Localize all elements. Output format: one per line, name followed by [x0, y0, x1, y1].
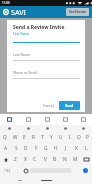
button[interactable]: First Name — [13, 32, 80, 43]
button[interactable]: I — [65, 132, 74, 143]
button[interactable]: Send Invite — [66, 8, 89, 16]
button[interactable]: , — [14, 165, 22, 176]
button[interactable]: Backspace — [80, 154, 92, 165]
button[interactable]: Key option 2 — [38, 125, 56, 132]
staticText: M — [73, 156, 78, 163]
staticText: E — [23, 134, 26, 141]
button[interactable]: Emoji — [22, 165, 30, 176]
button[interactable]: Z — [11, 154, 20, 165]
staticText: SAVI — [11, 7, 27, 17]
staticText: R — [32, 134, 35, 141]
staticText: Last Name — [13, 52, 30, 57]
button[interactable]: Last Name — [13, 52, 80, 61]
staticText: . — [74, 168, 76, 174]
button[interactable]: Key option 0 — [0, 125, 19, 132]
button[interactable]: H — [51, 143, 61, 154]
button[interactable]: Key option 4 — [74, 125, 92, 132]
button[interactable]: N — [60, 154, 70, 165]
staticText: B — [53, 156, 57, 163]
button[interactable]: L — [81, 143, 91, 154]
button[interactable]: Q — [0, 132, 10, 143]
staticText: Cancel — [43, 103, 54, 108]
staticText: Send Invite — [69, 10, 86, 14]
staticText: Send — [65, 103, 74, 108]
button[interactable]: Y — [47, 132, 56, 143]
button[interactable]: M — [70, 154, 80, 165]
button[interactable]: Home — [0, 114, 19, 125]
button[interactable]: Invites — [38, 114, 56, 125]
staticText: F — [35, 145, 38, 152]
staticText: Phone or Email — [13, 70, 38, 75]
button[interactable]: G — [41, 143, 51, 154]
staticText: I — [69, 134, 71, 141]
staticText: N — [63, 156, 67, 163]
button[interactable]: V — [40, 154, 50, 165]
button[interactable]: Reports — [56, 114, 74, 125]
staticText: J — [65, 145, 67, 152]
button[interactable]: Shift — [0, 154, 11, 165]
button[interactable]: Key option 1 — [19, 125, 38, 132]
staticText: P — [86, 134, 89, 141]
button[interactable]: P — [83, 132, 92, 143]
button[interactable]: T — [38, 132, 47, 143]
button[interactable]: J — [61, 143, 71, 154]
button[interactable]: Enter — [79, 165, 91, 176]
button[interactable]: E — [20, 132, 29, 143]
staticText: , — [17, 168, 19, 174]
button[interactable]: D — [21, 143, 31, 154]
button[interactable]: B — [50, 154, 60, 165]
staticText: ?123 — [4, 169, 11, 173]
staticText: S — [15, 145, 18, 152]
button[interactable]: R — [29, 132, 38, 143]
staticText: Send a Review Invite — [13, 24, 65, 31]
button[interactable]: Settings — [74, 114, 92, 125]
staticText: G — [44, 145, 48, 152]
staticText: C — [33, 156, 37, 163]
button[interactable]: S — [11, 143, 21, 154]
button[interactable]: Send — [59, 101, 80, 110]
button[interactable]: Symbols — [1, 165, 14, 176]
button[interactable]: A — [1, 143, 11, 154]
button[interactable]: Reviews — [19, 114, 38, 125]
button[interactable]: U — [56, 132, 65, 143]
button[interactable]: O — [74, 132, 83, 143]
staticText: K — [75, 145, 78, 152]
staticText: U — [59, 134, 63, 141]
button[interactable]: F — [31, 143, 41, 154]
button[interactable]: Cancel — [40, 101, 57, 110]
staticText: H — [54, 145, 58, 152]
button[interactable]: W — [10, 132, 20, 143]
staticText: L — [85, 145, 88, 152]
staticText: First Name — [13, 32, 30, 36]
staticText: V — [44, 156, 47, 163]
staticText: A — [4, 145, 8, 152]
staticText: D — [24, 145, 28, 152]
button[interactable]: C — [30, 154, 40, 165]
button[interactable]: Phone or Email — [13, 70, 80, 79]
staticText: 11:06 — [2, 1, 10, 5]
button[interactable]: K — [71, 143, 81, 154]
staticText: O — [77, 134, 81, 141]
button[interactable]: X — [20, 154, 30, 165]
staticText: W — [13, 134, 18, 141]
staticText: X — [24, 156, 27, 163]
staticText: Y — [50, 134, 53, 141]
staticText: Z — [14, 156, 17, 163]
staticText: Q — [3, 134, 7, 141]
staticText: T — [41, 134, 44, 141]
button[interactable]: Key option 3 — [56, 125, 74, 132]
